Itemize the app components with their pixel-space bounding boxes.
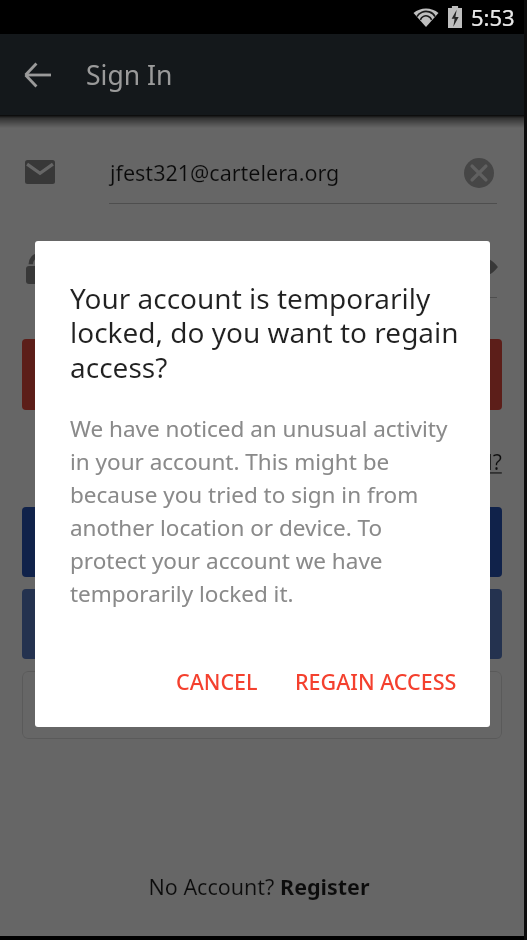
staticText: Your account is temporarily locked, do y… xyxy=(70,279,460,387)
button[interactable]: Forgot Password? xyxy=(327,448,502,477)
button[interactable]: Back xyxy=(14,51,62,99)
button[interactable]: SIGN IN WITH TWITTER xyxy=(22,589,502,659)
staticText: REGAIN ACCESS xyxy=(295,667,457,696)
staticText: SIGN IN WITH FACEBOOK xyxy=(135,528,390,557)
button[interactable]: SIGN IN xyxy=(22,339,502,410)
staticText: Sign In xyxy=(86,57,173,93)
button[interactable]: CANCEL xyxy=(162,657,272,706)
button[interactable]: SIGN IN AS GUEST xyxy=(22,671,502,739)
button[interactable]: REGAIN ACCESS xyxy=(281,657,471,706)
staticText: jfest321@cartelera.org xyxy=(110,158,340,187)
staticText: CANCEL xyxy=(176,667,258,696)
staticText: We have noticed an unusual activity in y… xyxy=(70,413,452,609)
button[interactable]: No Account? Register xyxy=(148,872,370,901)
staticText: 5:53 xyxy=(471,2,515,32)
button[interactable]: SIGN IN WITH FACEBOOK xyxy=(22,507,502,577)
button[interactable]: Show password xyxy=(463,249,499,285)
button[interactable]: Clear email xyxy=(464,158,494,188)
